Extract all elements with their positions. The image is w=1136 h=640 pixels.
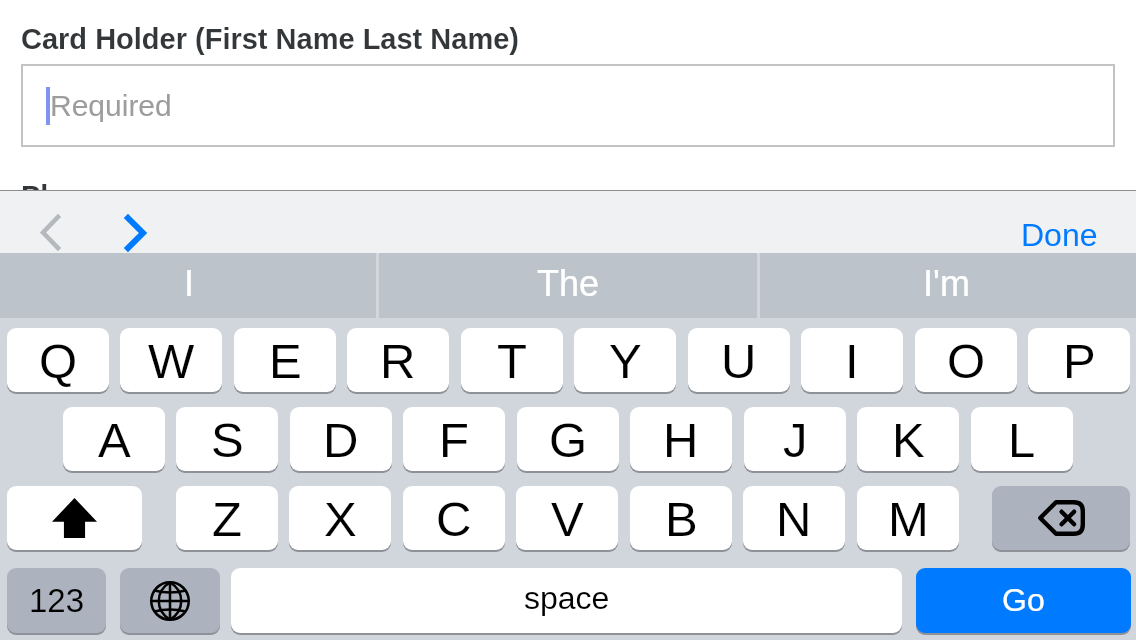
staticText: V: [551, 492, 584, 547]
other: Shift: [7, 486, 142, 550]
staticText: G: [549, 413, 588, 468]
button[interactable]: I'm: [757, 253, 1136, 318]
button[interactable]: Go: [916, 568, 1131, 633]
staticText: Go: [1002, 582, 1045, 618]
staticText: K: [892, 413, 925, 468]
staticText: R: [380, 334, 416, 389]
staticText: H: [663, 413, 699, 468]
button[interactable]: F: [403, 407, 505, 471]
button[interactable]: I: [801, 328, 903, 392]
button[interactable]: V: [516, 486, 618, 550]
button[interactable]: Y: [574, 328, 676, 392]
staticText: J: [783, 413, 808, 468]
button[interactable]: space: [231, 568, 902, 633]
staticText: A: [98, 413, 131, 468]
staticText: Q: [39, 334, 78, 389]
button[interactable]: Previous field: [28, 201, 72, 264]
staticText: U: [721, 334, 757, 389]
button[interactable]: K: [857, 407, 959, 471]
button[interactable]: S: [176, 407, 278, 471]
staticText: Card Holder (First Name Last Name): [21, 23, 519, 55]
staticText: N: [776, 492, 812, 547]
button[interactable]: E: [234, 328, 336, 392]
staticText: O: [947, 334, 986, 389]
staticText: C: [436, 492, 472, 547]
staticText: I: [184, 263, 195, 303]
button[interactable]: Z: [176, 486, 278, 550]
button[interactable]: 123: [7, 568, 106, 633]
staticText: S: [211, 413, 244, 468]
button[interactable]: A: [63, 407, 165, 471]
staticText: Required: [50, 89, 172, 123]
button[interactable]: I: [0, 253, 379, 318]
button[interactable]: U: [688, 328, 790, 392]
staticText: X: [324, 492, 357, 547]
button[interactable]: [7, 486, 142, 550]
button[interactable]: P: [1028, 328, 1130, 392]
button[interactable]: N: [743, 486, 845, 550]
button[interactable]: T: [461, 328, 563, 392]
button[interactable]: Done: [1003, 196, 1116, 248]
button[interactable]: Required: [21, 64, 1115, 147]
button[interactable]: L: [971, 407, 1073, 471]
staticText: L: [1008, 413, 1036, 468]
staticText: P: [1063, 334, 1096, 389]
staticText: F: [439, 413, 469, 468]
staticText: Ph: [21, 180, 59, 212]
button[interactable]: G: [517, 407, 619, 471]
button[interactable]: J: [744, 407, 846, 471]
button[interactable]: [992, 486, 1130, 550]
button[interactable]: H: [630, 407, 732, 471]
staticText: D: [323, 413, 359, 468]
other: Backspace: [992, 486, 1130, 550]
button[interactable]: B: [630, 486, 732, 550]
button[interactable]: C: [403, 486, 505, 550]
staticText: M: [888, 492, 929, 547]
staticText: The: [537, 263, 600, 303]
button[interactable]: R: [347, 328, 449, 392]
button[interactable]: M: [857, 486, 959, 550]
staticText: I'm: [923, 263, 970, 303]
staticText: 123: [29, 582, 85, 619]
staticText: T: [497, 334, 527, 389]
button[interactable]: Q: [7, 328, 109, 392]
button[interactable]: W: [120, 328, 222, 392]
button[interactable]: D: [290, 407, 392, 471]
button[interactable]: O: [915, 328, 1017, 392]
staticText: W: [148, 334, 195, 389]
button[interactable]: Next field: [113, 201, 157, 264]
staticText: B: [665, 492, 698, 547]
staticText: Z: [212, 492, 242, 547]
staticText: I: [845, 334, 859, 389]
button[interactable]: The: [379, 253, 758, 318]
staticText: space: [524, 580, 610, 616]
staticText: Done: [1021, 217, 1098, 253]
button[interactable]: [120, 568, 220, 633]
staticText: Y: [609, 334, 642, 389]
other: Next keyboard: [120, 568, 220, 633]
button[interactable]: X: [289, 486, 391, 550]
staticText: E: [269, 334, 302, 389]
